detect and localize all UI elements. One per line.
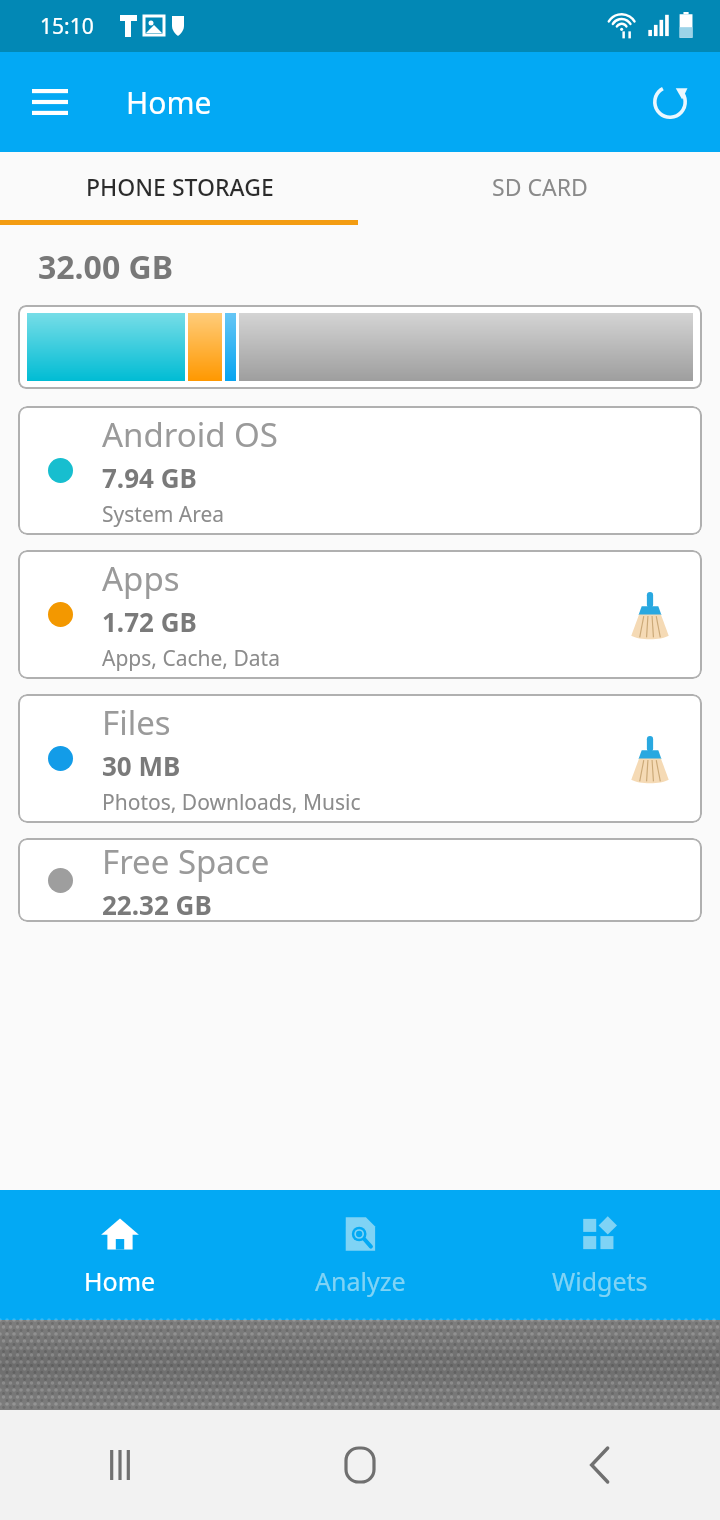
staticText: Apps, Cache, Data [102, 644, 280, 673]
staticText: Analyze [315, 1264, 406, 1298]
button[interactable]: SD CARD [360, 152, 720, 220]
button[interactable]: Refresh [638, 70, 702, 134]
staticText: 15:10 [40, 12, 94, 41]
button[interactable]: Recents [90, 1435, 150, 1495]
staticText: 7.94 GB [102, 460, 197, 495]
button[interactable]: Apps [18, 550, 702, 679]
button[interactable]: Home [0, 1190, 240, 1320]
staticText: System Area [102, 500, 225, 529]
button[interactable]: Free Space [18, 838, 702, 922]
staticText: Home [126, 82, 212, 123]
button[interactable]: Back [570, 1435, 630, 1495]
staticText: Photos, Downloads, Music [102, 788, 361, 817]
button[interactable]: Clean [618, 727, 682, 791]
button[interactable]: Analyze [240, 1190, 480, 1320]
staticText: SD CARD [492, 171, 588, 202]
button[interactable] [18, 305, 702, 389]
button[interactable]: Android OS [18, 406, 702, 535]
staticText: Home [84, 1264, 156, 1298]
staticText: Android OS [102, 412, 278, 457]
button[interactable]: PHONE STORAGE [0, 152, 360, 220]
staticText: Apps [102, 556, 180, 601]
button[interactable]: Files [18, 694, 702, 823]
staticText: 22.32 GB [102, 887, 212, 922]
staticText: 1.72 GB [102, 604, 197, 639]
staticText: Widgets [552, 1264, 648, 1298]
button[interactable]: Widgets [480, 1190, 720, 1320]
button[interactable]: Clean [618, 583, 682, 647]
button[interactable]: Home [330, 1435, 390, 1495]
staticText: PHONE STORAGE [86, 171, 274, 202]
staticText: 32.00 GB [38, 245, 173, 289]
staticText: 30 MB [102, 748, 181, 783]
staticText: Free Space [102, 839, 270, 884]
button[interactable]: Menu [18, 70, 82, 134]
staticText: Files [102, 700, 171, 745]
